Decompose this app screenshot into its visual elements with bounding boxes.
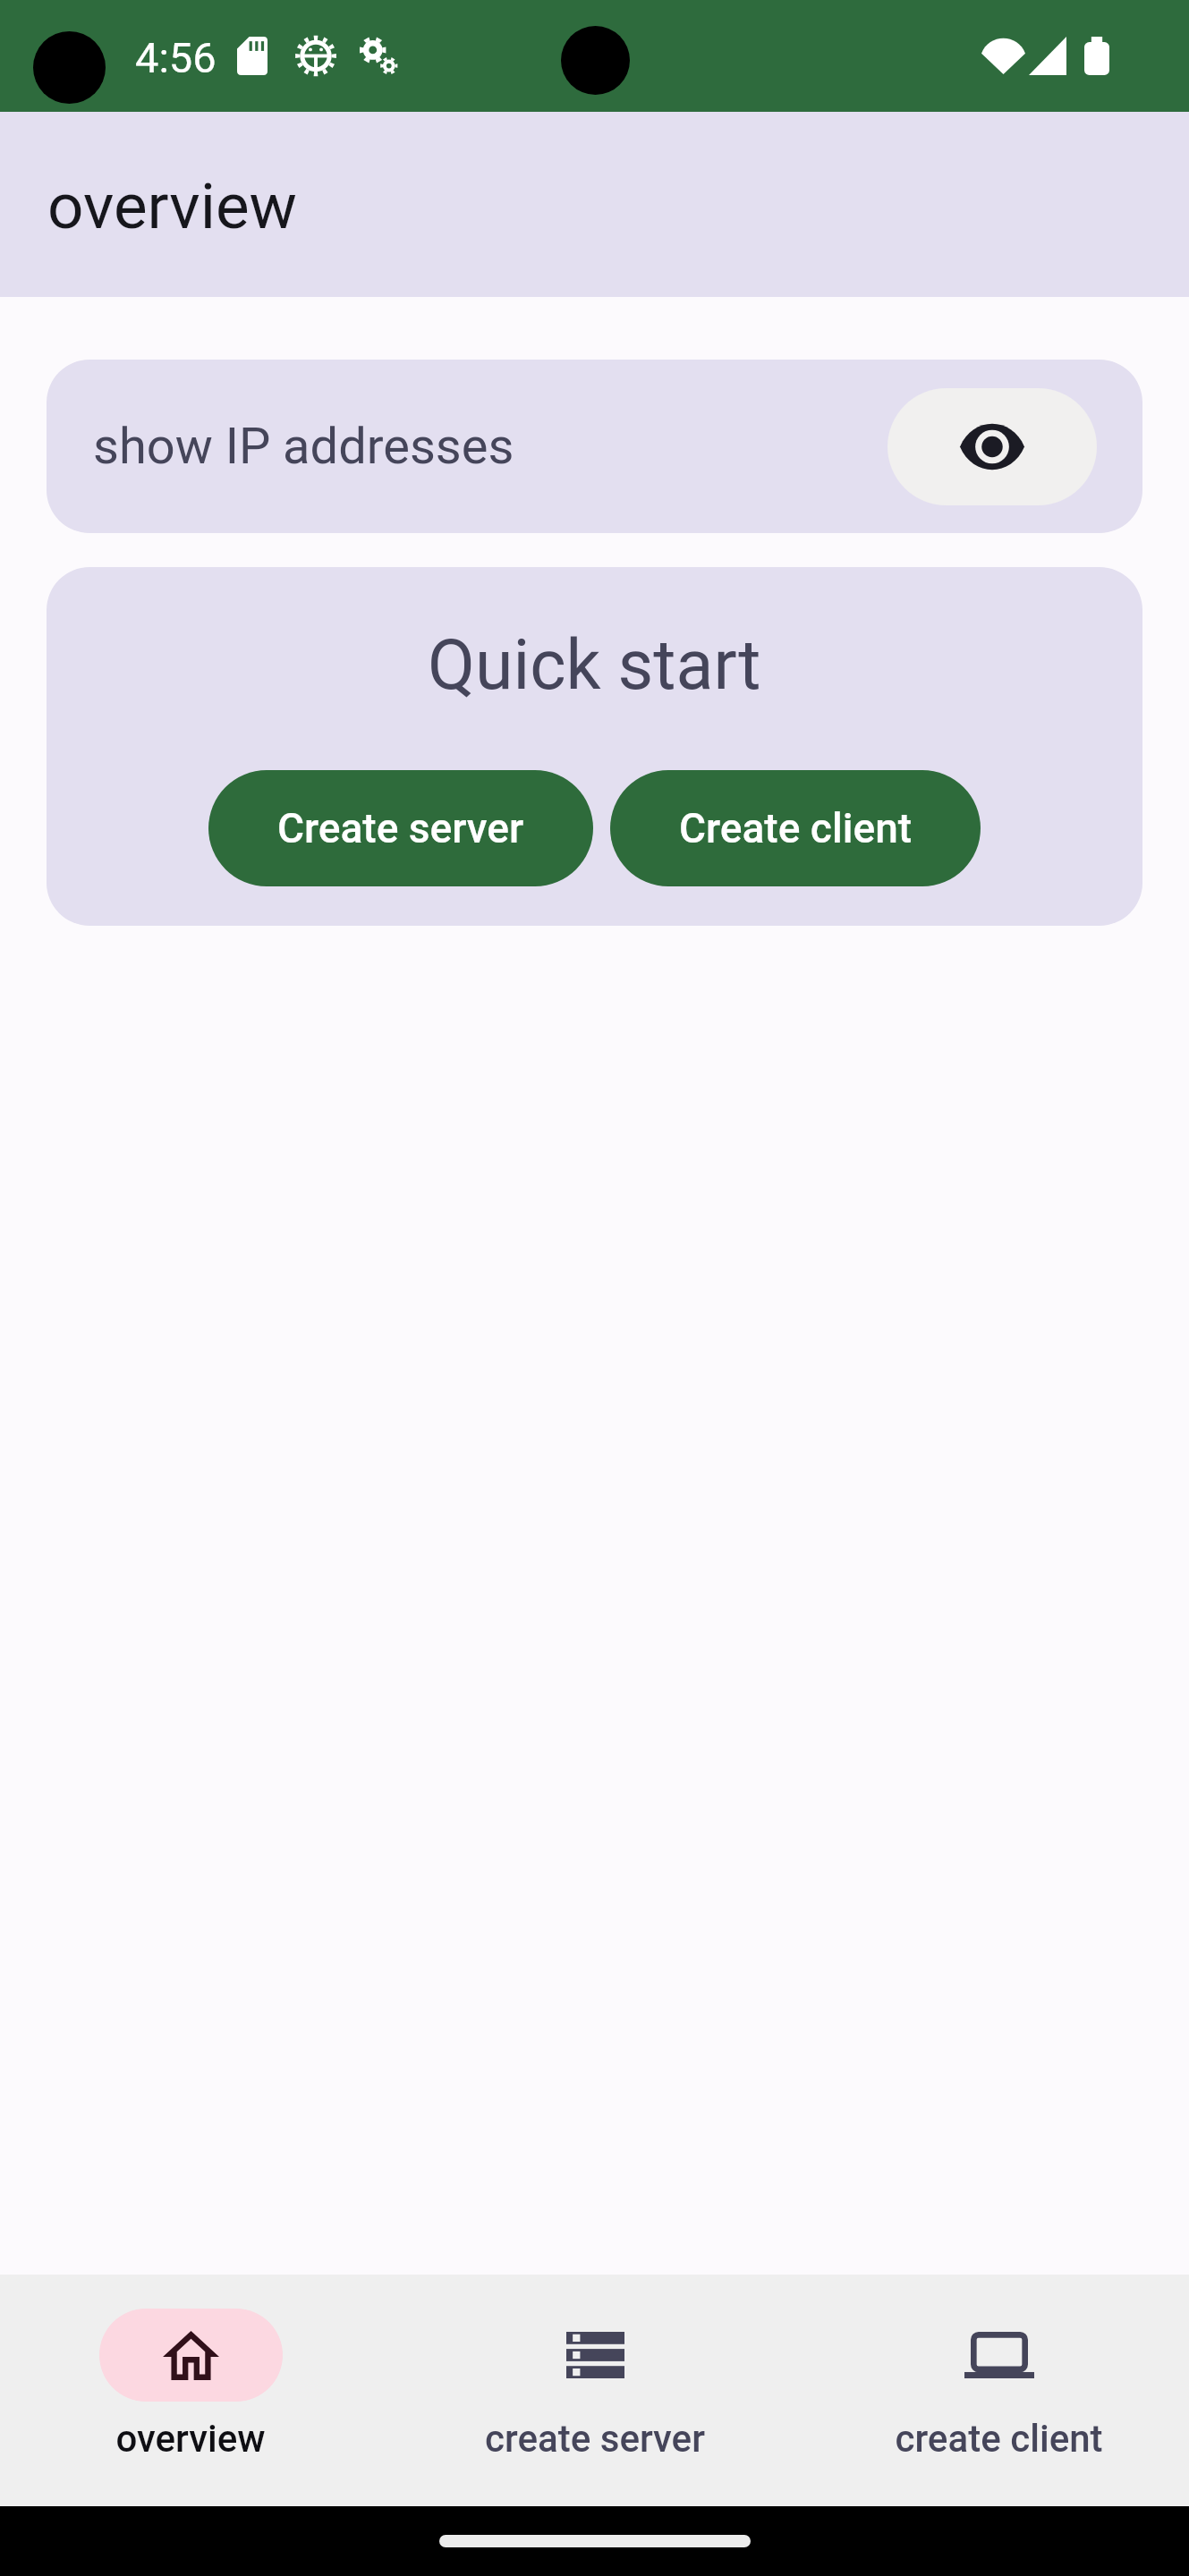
staticText: create server	[485, 2417, 705, 2461]
button[interactable]: overview	[0, 2275, 387, 2506]
staticText: Create server	[277, 804, 524, 852]
staticText: overview	[115, 2417, 266, 2461]
button[interactable]: create server	[398, 2275, 792, 2506]
staticText: create client	[895, 2417, 1103, 2461]
button[interactable]: Toggle show IP addresses	[888, 388, 1097, 505]
staticText: show IP addresses	[93, 417, 514, 476]
staticText: Quick start	[428, 625, 761, 706]
button[interactable]: show IP addresses	[47, 360, 1142, 533]
staticText: Create client	[679, 804, 913, 852]
button[interactable]: Create server	[208, 770, 593, 886]
staticText: 4:56	[135, 33, 217, 82]
button[interactable]: create client	[802, 2275, 1189, 2506]
staticText: overview	[47, 169, 297, 243]
button[interactable]: Create client	[610, 770, 981, 886]
